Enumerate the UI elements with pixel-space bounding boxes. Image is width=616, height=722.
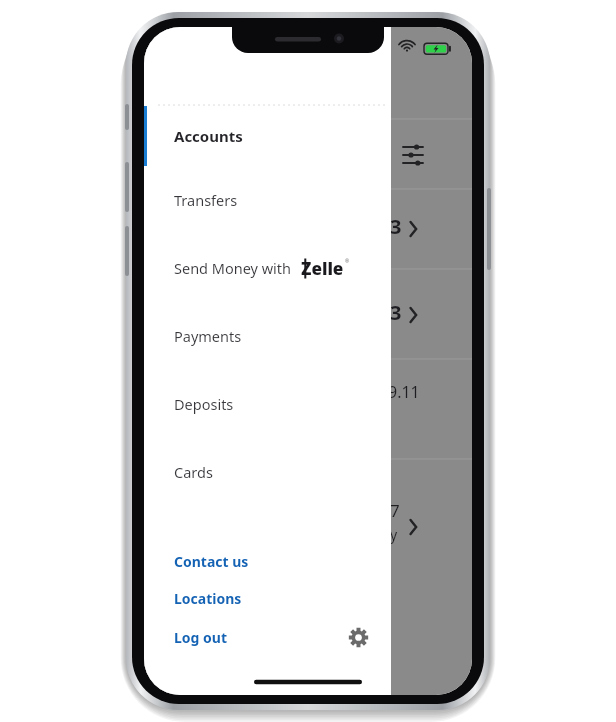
button[interactable]: Log out xyxy=(144,617,239,657)
button[interactable]: Transfers xyxy=(144,166,391,234)
staticText: Accounts xyxy=(174,126,243,146)
button[interactable]: Deposits xyxy=(144,370,391,438)
staticText: Cards xyxy=(174,462,213,482)
staticText: Payments xyxy=(174,326,242,346)
button[interactable]: Settings xyxy=(337,617,379,657)
staticText: Transfers xyxy=(174,190,238,210)
staticText: Zelle xyxy=(301,257,344,280)
staticText: Log out xyxy=(174,628,227,647)
button[interactable]: Accounts xyxy=(144,106,391,166)
staticText: Locations xyxy=(174,589,242,608)
staticText: Deposits xyxy=(174,394,234,414)
button[interactable]: Cards xyxy=(144,438,391,506)
staticText: ® xyxy=(345,258,350,265)
staticText: Contact us xyxy=(174,552,249,571)
staticText: 9.11 xyxy=(388,381,420,403)
staticText: 3 xyxy=(390,213,402,240)
staticText: y xyxy=(390,525,398,544)
button[interactable]: Send Money with xyxy=(144,234,391,302)
button[interactable]: Locations xyxy=(144,580,391,617)
staticText: 3 xyxy=(390,299,402,326)
staticText: Send Money with xyxy=(174,258,292,278)
staticText: 7 xyxy=(390,499,400,522)
button[interactable]: Contact us xyxy=(144,542,391,580)
button[interactable]: Payments xyxy=(144,302,391,370)
